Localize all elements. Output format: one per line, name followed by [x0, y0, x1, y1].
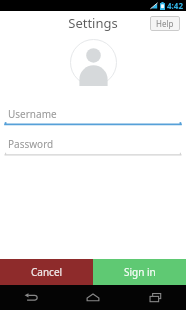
- staticText: Help: [156, 18, 174, 29]
- staticText: Sign in: [124, 265, 156, 279]
- button[interactable]: Home: [62, 285, 124, 310]
- button[interactable]: Help: [150, 16, 180, 31]
- button[interactable]: Cancel: [0, 259, 93, 285]
- button[interactable]: Recent apps: [124, 285, 186, 310]
- button[interactable]: Password: [5, 137, 181, 156]
- staticText: Cancel: [31, 265, 63, 279]
- staticText: Username: [8, 107, 57, 121]
- button[interactable]: Profile picture: [70, 39, 117, 86]
- button[interactable]: Sign in: [93, 259, 186, 285]
- staticText: 4:42: [167, 0, 183, 11]
- staticText: Password: [8, 137, 54, 151]
- button[interactable]: Back: [0, 285, 62, 310]
- button[interactable]: Username: [5, 107, 181, 126]
- staticText: Settings: [68, 14, 118, 32]
